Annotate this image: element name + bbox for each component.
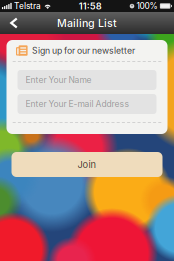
button[interactable]: Back — [0, 12, 28, 34]
staticText: Enter Your Name — [25, 75, 91, 85]
staticText: 100% — [136, 1, 157, 11]
staticText: Join — [77, 159, 96, 170]
staticText: Telstra — [14, 1, 41, 11]
staticText: 11:58 — [79, 0, 102, 12]
staticText: Mailing List — [57, 16, 117, 29]
staticText: Enter Your E-mail Address — [25, 99, 129, 109]
staticText: Sign up for our newsletter — [32, 45, 135, 56]
button[interactable]: Join — [11, 152, 162, 177]
